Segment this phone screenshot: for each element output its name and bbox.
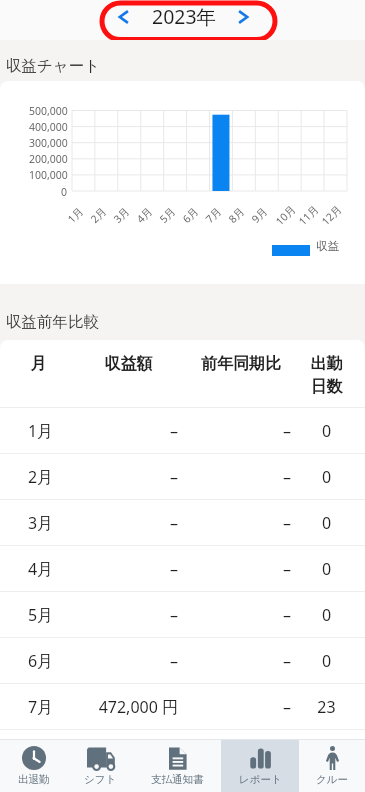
staticText: 400,000 [29,120,68,134]
staticText: 300,000 [29,136,68,150]
staticText: 2月 [4,466,77,488]
staticText: 出退勤 [18,773,50,786]
button[interactable]: 5月 [0,592,365,637]
button[interactable]: クルー [299,740,365,792]
staticText: – [180,558,291,580]
button[interactable]: 次の年 [226,1,260,33]
staticText: レポート [239,773,282,786]
button[interactable]: 4月 [0,546,365,591]
staticText: 5月 [4,604,77,626]
button[interactable]: レポート [221,740,299,792]
staticText: 0 [302,650,351,672]
button[interactable]: シフト [67,740,133,792]
staticText: – [180,512,291,534]
staticText: 収益額 [77,354,180,374]
staticText: 4月 [133,204,155,226]
staticText: – [180,650,291,672]
staticText: – [77,650,178,672]
staticText: 100,000 [29,168,68,182]
staticText: 7月 [4,696,77,718]
button[interactable]: 3月 [0,500,365,545]
staticText: – [77,558,178,580]
staticText: – [180,420,291,442]
staticText: 7月 [202,204,224,226]
staticText: 9月 [248,204,270,226]
staticText: 200,000 [29,152,68,166]
staticText: 1月 [4,420,77,442]
staticText: 5月 [156,204,178,226]
staticText: 収益チャート [6,56,101,76]
staticText: – [77,466,178,488]
button[interactable]: 前の年 [107,1,141,33]
staticText: 12月 [318,202,345,228]
button[interactable]: 出退勤 [0,740,67,792]
staticText: 23 [302,696,351,718]
staticText: 0 [302,420,351,442]
staticText: クルー [316,773,348,786]
staticText: 4月 [4,558,77,580]
button[interactable]: 6月 [0,638,365,683]
staticText: – [77,604,178,626]
staticText: 0 [302,466,351,488]
staticText: 前年同期比 [180,354,302,374]
button[interactable]: 7月 [0,684,365,729]
staticText: 0 [302,604,351,626]
staticText: 3月 [4,512,77,534]
staticText: 出勤 日数 [302,354,351,397]
staticText: 収益前年比較 [6,312,99,332]
staticText: 1月 [64,204,86,226]
staticText: 収益 [316,239,339,253]
staticText: 0 [302,512,351,534]
staticText: – [180,696,291,718]
staticText: 8月 [225,204,247,226]
staticText: シフト [84,773,117,786]
staticText: 2月 [87,204,109,226]
staticText: – [77,512,178,534]
staticText: 0 [61,185,68,199]
staticText: 11月 [295,202,322,228]
staticText: 0 [302,558,351,580]
button[interactable]: 支払通知書 [133,740,221,792]
staticText: 2023年 [152,3,217,30]
staticText: 月 [0,354,77,374]
staticText: 6月 [4,650,77,672]
staticText: 500,000 [29,104,68,118]
staticText: 6月 [179,204,201,226]
staticText: 支払通知書 [151,773,204,786]
staticText: – [77,420,178,442]
staticText: – [180,604,291,626]
staticText: – [180,466,291,488]
staticText: 472,000 円 [77,696,178,718]
staticText: 10月 [272,202,299,228]
button[interactable]: 2月 [0,454,365,499]
button[interactable]: 1月 [0,408,365,453]
staticText: 3月 [110,204,132,226]
